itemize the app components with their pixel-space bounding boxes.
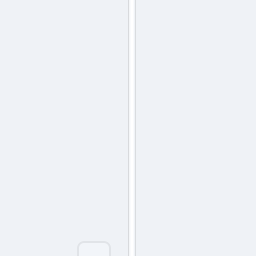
- button[interactable]: Open: [77, 241, 111, 256]
